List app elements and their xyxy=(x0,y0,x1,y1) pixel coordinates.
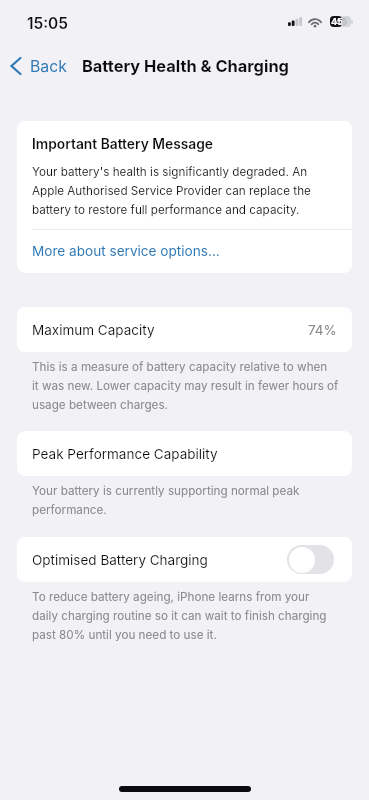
staticText: This is a measure of battery capacity re… xyxy=(32,356,339,413)
staticText: 74% xyxy=(308,322,337,338)
button[interactable]: More about service options… xyxy=(17,230,352,273)
staticText: 45 xyxy=(331,16,342,27)
staticText: Maximum Capacity xyxy=(32,322,155,338)
button[interactable]: Maximum Capacity xyxy=(17,307,352,352)
staticText: Battery Health & Charging xyxy=(82,56,289,76)
staticText: Optimised Battery Charging xyxy=(32,552,208,568)
staticText: Your battery is currently supporting nor… xyxy=(32,480,300,518)
button[interactable]: Back xyxy=(9,56,67,76)
button[interactable]: Peak Performance Capability xyxy=(17,431,352,476)
staticText: Back xyxy=(30,57,67,76)
staticText: 45 xyxy=(335,16,347,27)
staticText: Your battery's health is significantly d… xyxy=(32,161,311,218)
button[interactable]: Optimised Battery Charging toggle, off xyxy=(287,545,334,574)
staticText: Peak Performance Capability xyxy=(32,446,218,462)
staticText: More about service options… xyxy=(32,243,220,259)
staticText: 15:05 xyxy=(27,14,68,33)
staticText: To reduce battery ageing, iPhone learns … xyxy=(32,586,327,643)
staticText: Important Battery Message xyxy=(32,136,214,153)
